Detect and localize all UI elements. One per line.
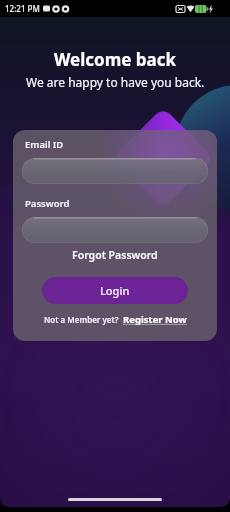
button[interactable]: Login <box>42 277 188 304</box>
staticText: Not a Member yet? <box>44 314 119 325</box>
button[interactable]: Not a Member yet? <box>44 313 187 326</box>
button[interactable]: Forgot Password <box>22 248 208 262</box>
staticText: Password <box>25 197 70 210</box>
staticText: We are happy to have you back. <box>26 74 205 90</box>
staticText: Email ID <box>25 138 64 151</box>
staticText: Login <box>100 283 130 298</box>
staticText: Register Now <box>123 313 187 326</box>
staticText: 12:21 PM <box>5 3 40 14</box>
button[interactable] <box>22 158 208 184</box>
staticText: Forgot Password <box>72 248 158 262</box>
staticText: Welcome back <box>54 48 177 71</box>
button[interactable] <box>22 217 208 243</box>
